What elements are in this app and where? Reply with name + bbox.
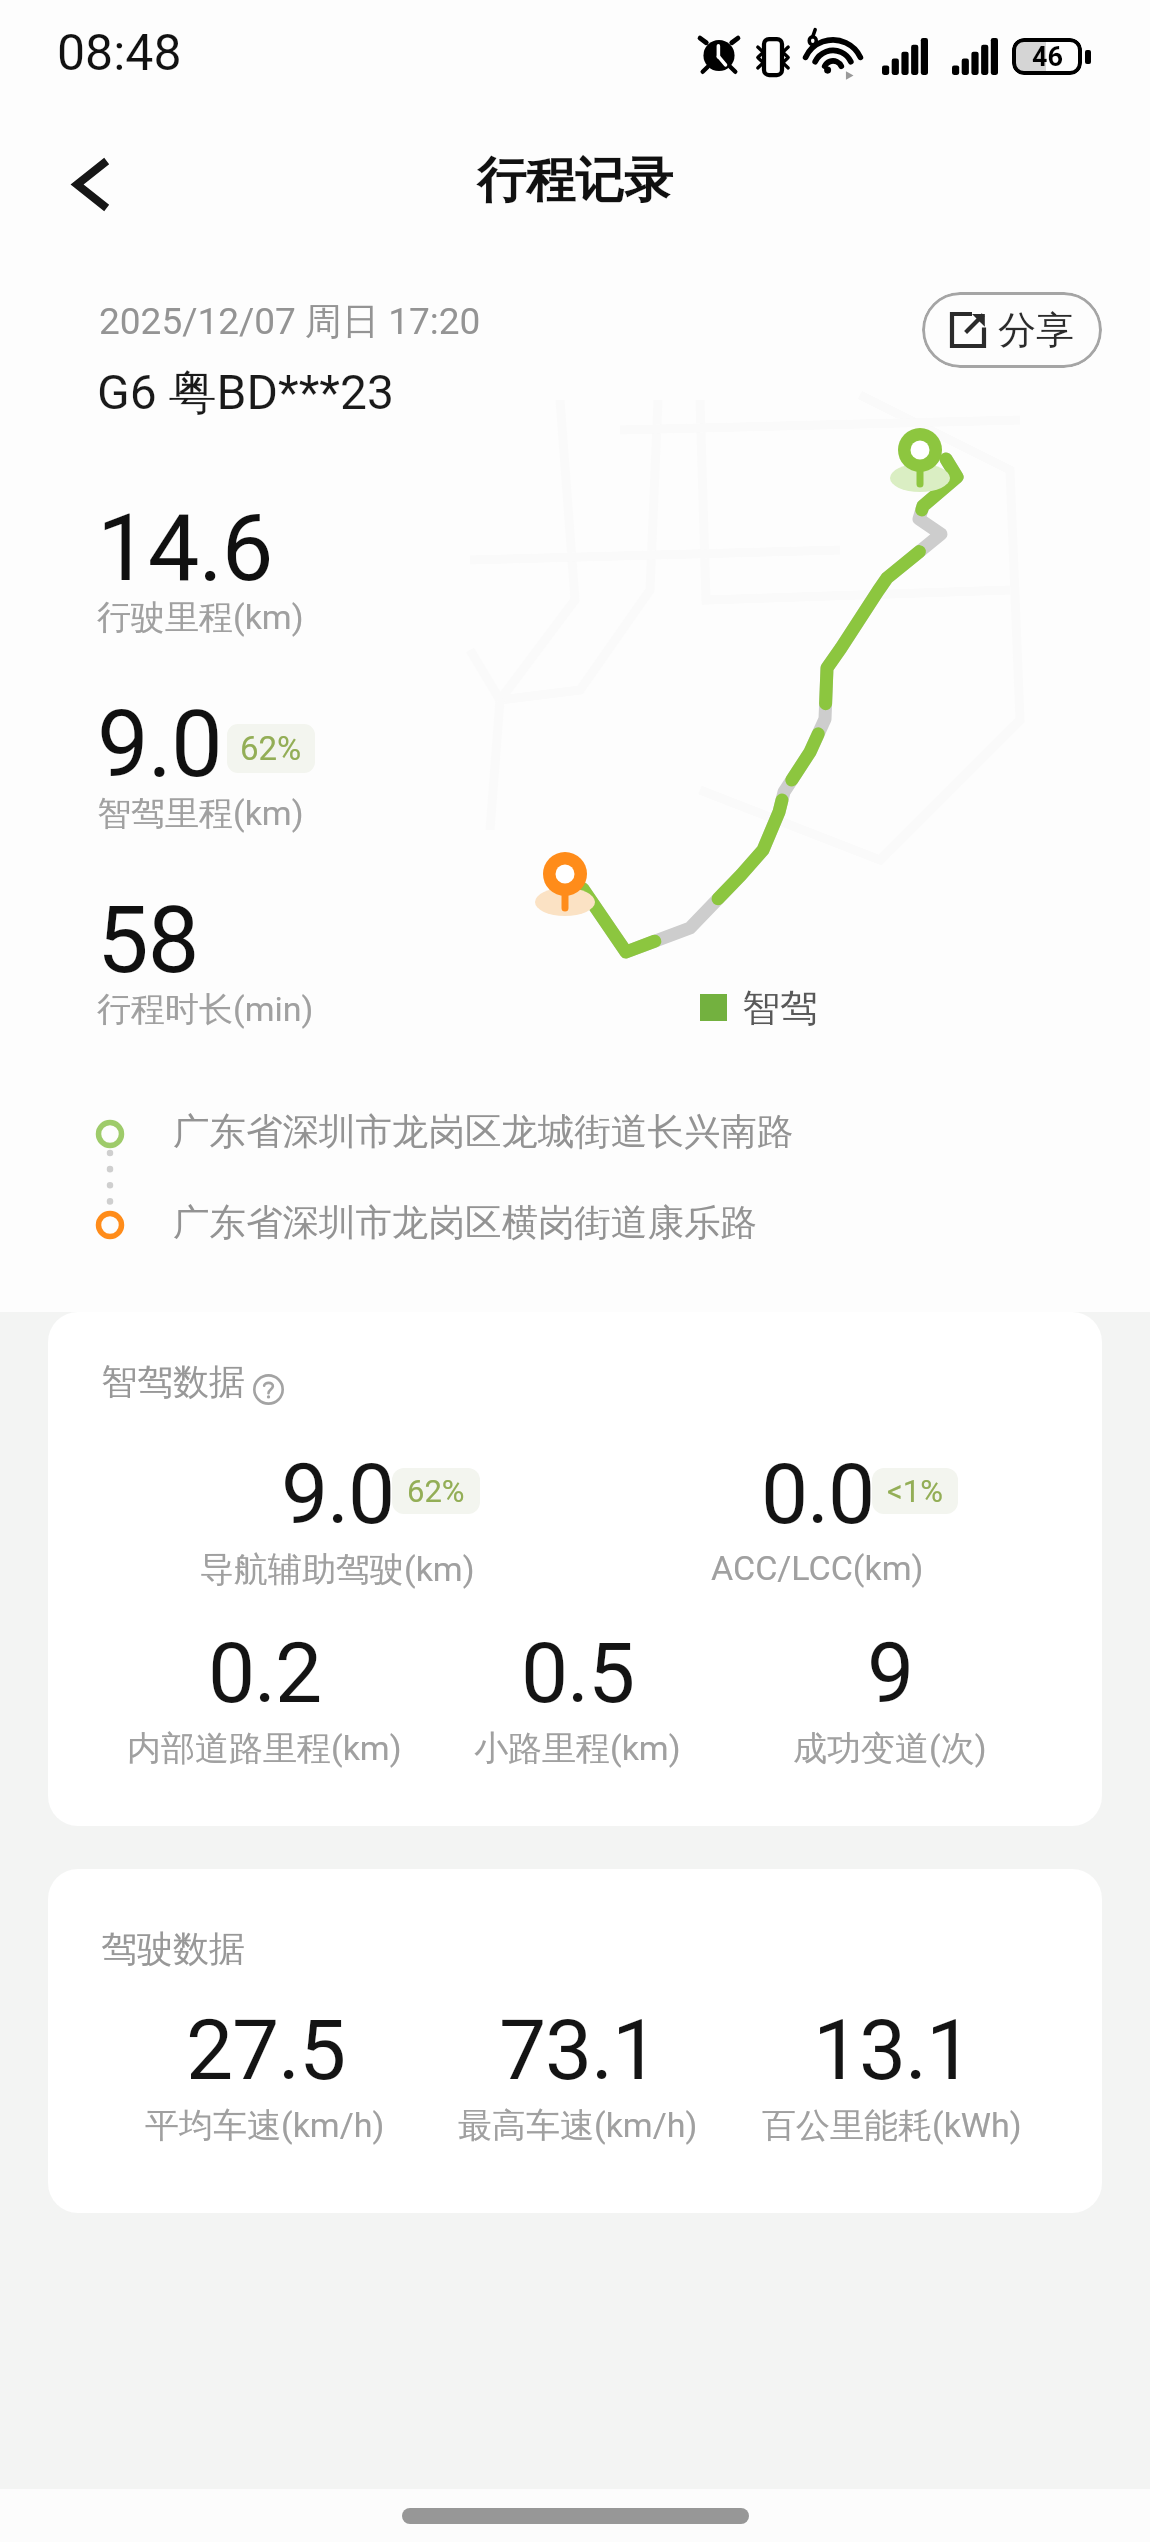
- staticText: 驾驶数据: [101, 1926, 245, 1971]
- staticText: 智驾里程(km): [97, 792, 304, 835]
- staticText: 46: [1032, 41, 1063, 73]
- staticText: 成功变道(次): [793, 1727, 987, 1770]
- button[interactable]: Back: [36, 129, 146, 239]
- staticText: ACC/LCC(km): [711, 1548, 924, 1588]
- staticText: 08:48: [57, 24, 182, 83]
- staticText: 27.5: [186, 2001, 345, 2099]
- staticText: 0.0: [761, 1445, 874, 1543]
- staticText: 行程记录: [477, 150, 673, 212]
- staticText: 62%: [240, 729, 302, 768]
- staticText: 平均车速(km/h): [145, 2104, 385, 2147]
- staticText: 58: [97, 887, 199, 995]
- staticText: 小路里程(km): [474, 1727, 681, 1770]
- staticText: 行驶里程(km): [97, 596, 304, 639]
- staticText: 百公里能耗(kWh): [762, 2104, 1022, 2147]
- staticText: 导航辅助驾驶(km): [200, 1548, 475, 1591]
- staticText: 广东省深圳市龙岗区横岗街道康乐路: [173, 1200, 757, 1246]
- staticText: 最高车速(km/h): [458, 2104, 698, 2147]
- staticText: 广东省深圳市龙岗区龙城街道长兴南路: [173, 1109, 794, 1155]
- staticText: 14.6: [97, 495, 273, 603]
- staticText: 73.1: [499, 2001, 658, 2099]
- button[interactable]: 分享: [922, 292, 1102, 368]
- staticText: G6 粤BD***23: [97, 363, 394, 423]
- staticText: 0.2: [208, 1624, 321, 1722]
- staticText: 行程时长(min): [97, 988, 314, 1031]
- staticText: 内部道路里程(km): [127, 1727, 402, 1770]
- staticText: 智驾数据: [101, 1359, 245, 1404]
- staticText: 9: [867, 1624, 914, 1722]
- staticText: 9.0: [281, 1445, 394, 1543]
- staticText: 2025/12/07 周日 17:20: [99, 298, 481, 345]
- staticText: <1%: [887, 1473, 943, 1509]
- staticText: 0.5: [521, 1624, 634, 1722]
- staticText: 9.0: [97, 691, 222, 799]
- staticText: 62%: [407, 1473, 465, 1509]
- staticText: 13.1: [813, 2001, 972, 2099]
- staticText: 分享: [998, 306, 1074, 354]
- staticText: 智驾: [742, 984, 818, 1032]
